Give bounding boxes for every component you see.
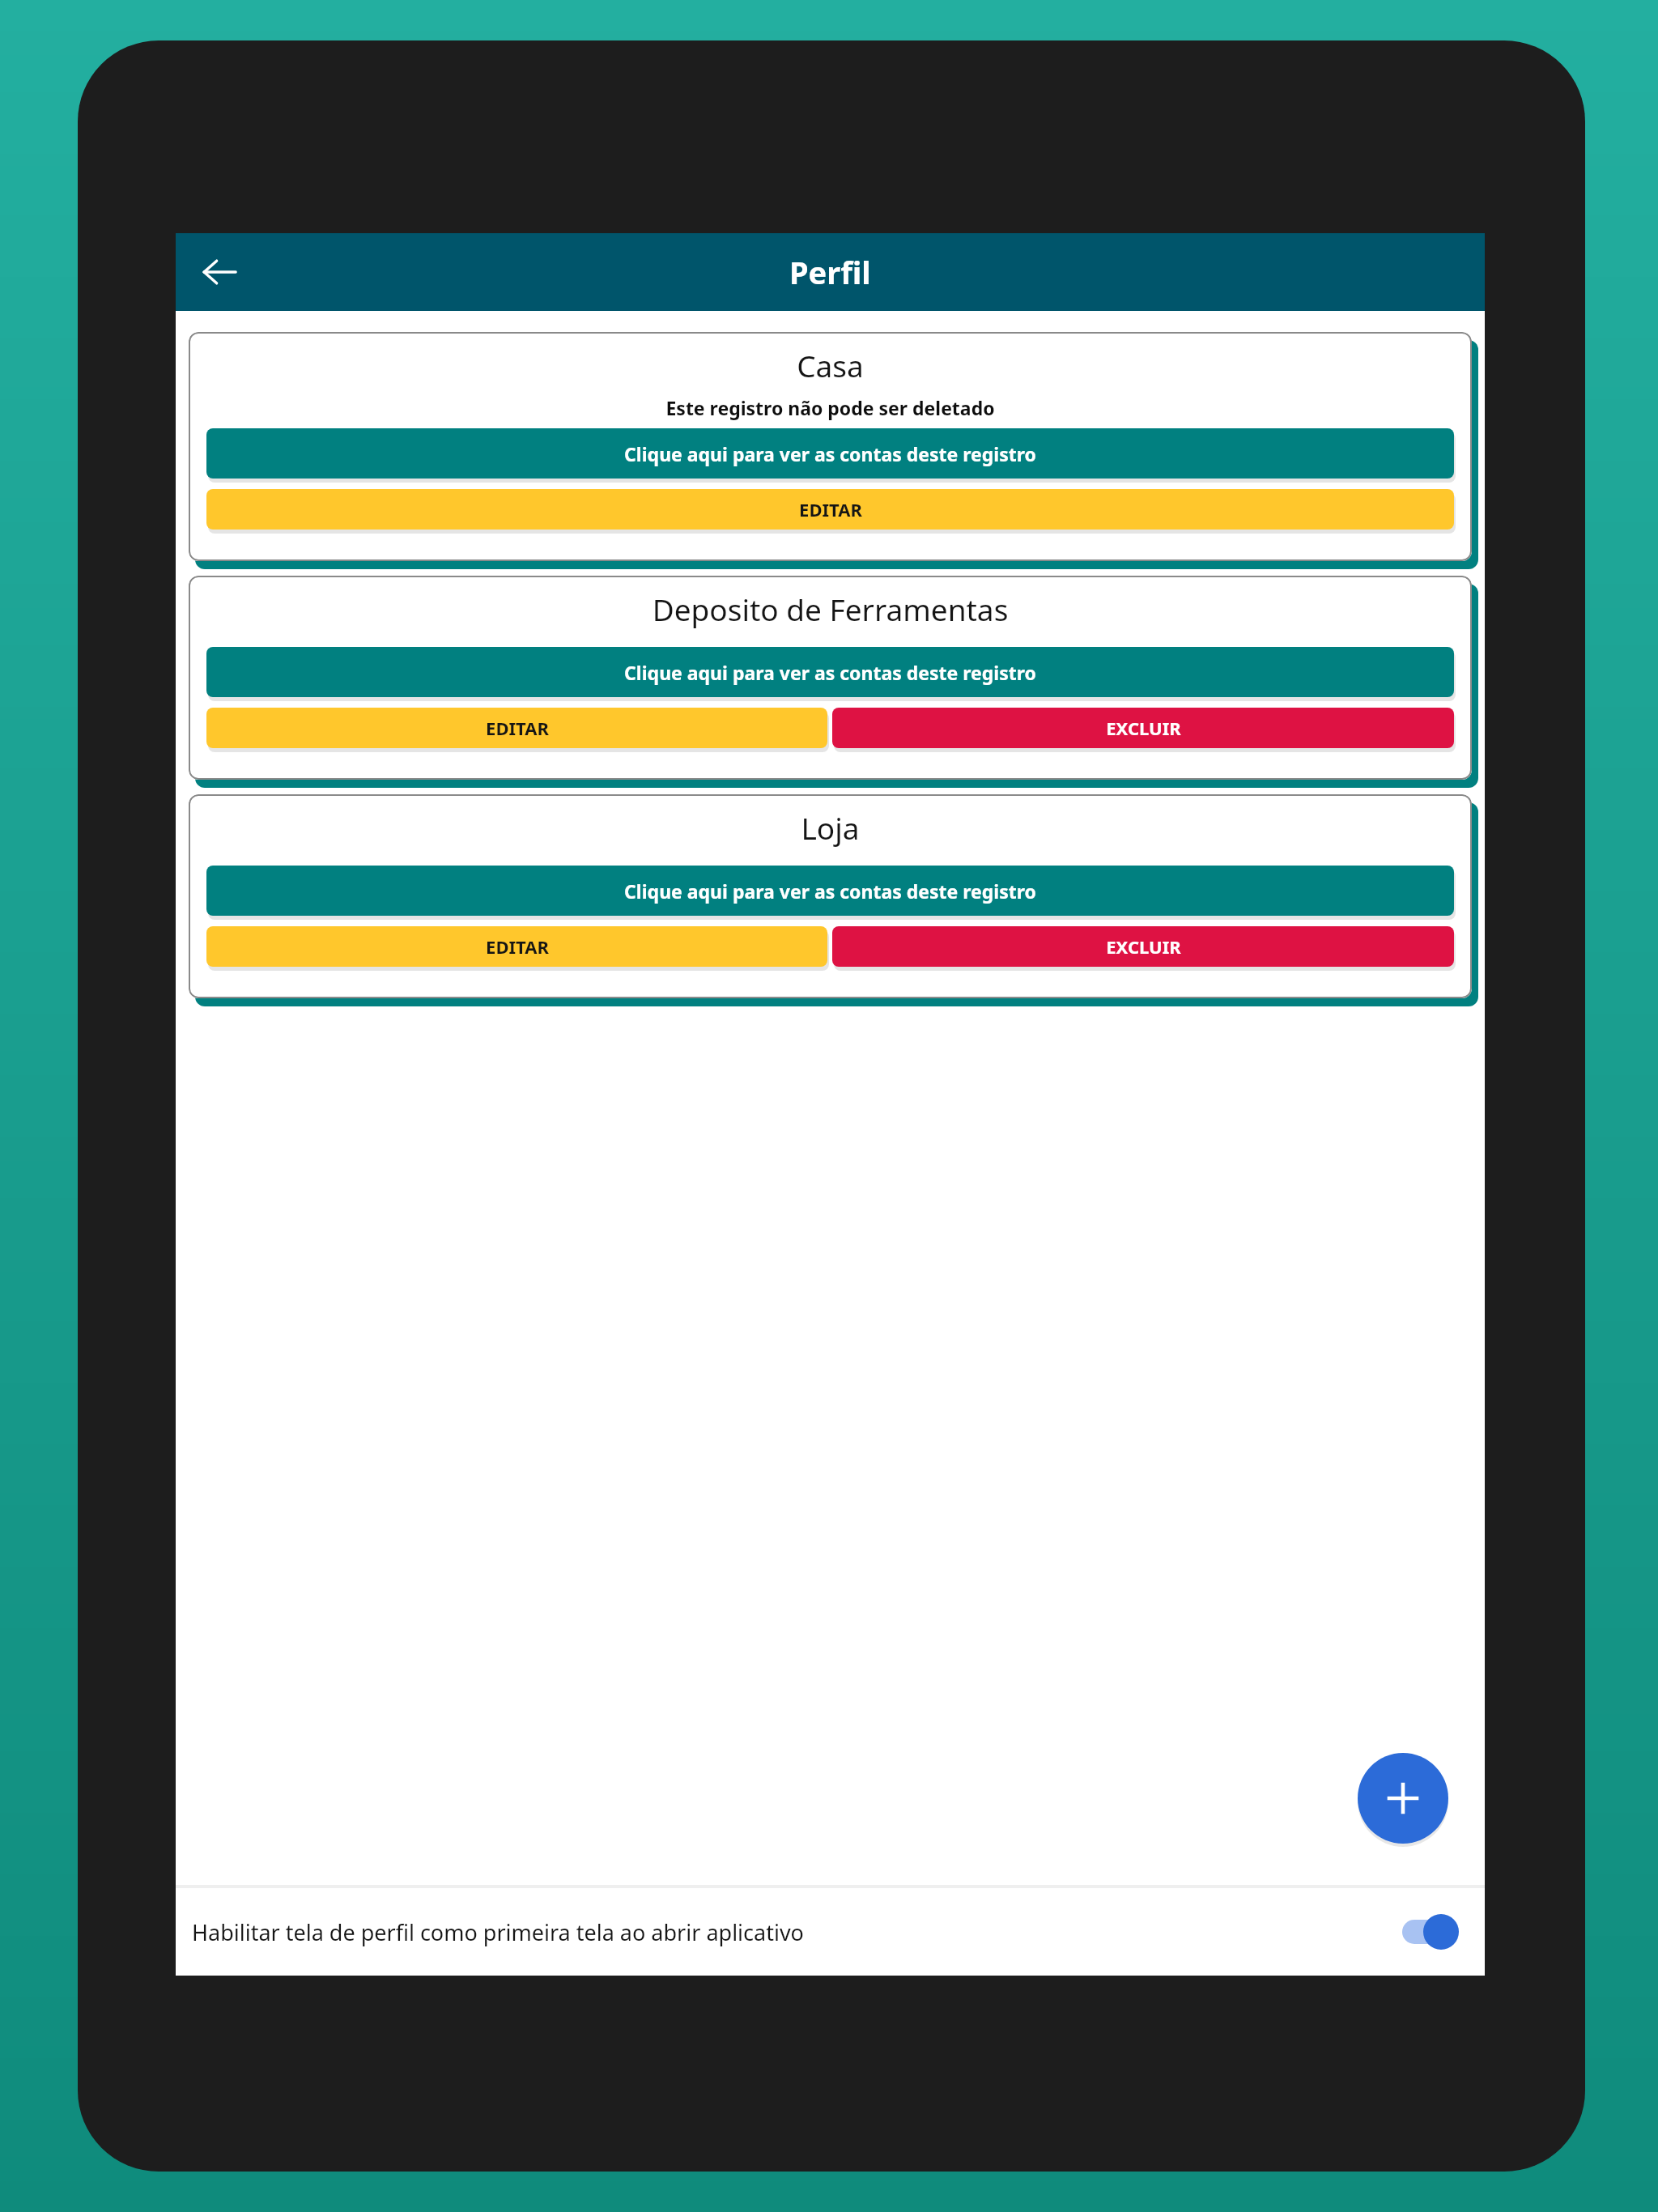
staticText: EDITAR: [486, 716, 549, 740]
button[interactable]: Loja: [189, 794, 1472, 998]
staticText: Deposito de Ferramentas: [206, 589, 1454, 629]
button[interactable]: Clique aqui para ver as contas deste reg…: [206, 866, 1454, 916]
staticText: Casa: [206, 345, 1454, 385]
button[interactable]: Clique aqui para ver as contas deste reg…: [206, 647, 1454, 697]
button[interactable]: EDITAR: [206, 708, 827, 748]
staticText: Perfil: [789, 251, 871, 293]
button[interactable]: Add: [1358, 1753, 1448, 1844]
button[interactable]: EXCLUIR: [832, 926, 1454, 967]
other: Enable profile screen first: [1397, 1912, 1460, 1951]
staticText: EDITAR: [799, 497, 862, 521]
button[interactable]: EXCLUIR: [832, 708, 1454, 748]
staticText: Este registro não pode ser deletado: [206, 395, 1454, 420]
staticText: EDITAR: [486, 934, 549, 959]
button[interactable]: Casa: [189, 332, 1472, 561]
button[interactable]: Clique aqui para ver as contas deste reg…: [206, 428, 1454, 479]
button[interactable]: EDITAR: [206, 489, 1454, 530]
staticText: Clique aqui para ver as contas deste reg…: [624, 660, 1036, 685]
staticText: EXCLUIR: [1106, 716, 1181, 740]
button[interactable]: EDITAR: [206, 926, 827, 967]
button[interactable]: Habilitar tela de perfil como primeira t…: [176, 1888, 1485, 1976]
staticText: Loja: [206, 807, 1454, 848]
staticText: Clique aqui para ver as contas deste reg…: [624, 878, 1036, 904]
staticText: EXCLUIR: [1106, 934, 1181, 959]
staticText: Clique aqui para ver as contas deste reg…: [624, 441, 1036, 466]
staticText: Habilitar tela de perfil como primeira t…: [192, 1917, 1397, 1947]
button[interactable]: Deposito de Ferramentas: [189, 576, 1472, 780]
button[interactable]: Back: [190, 243, 249, 301]
